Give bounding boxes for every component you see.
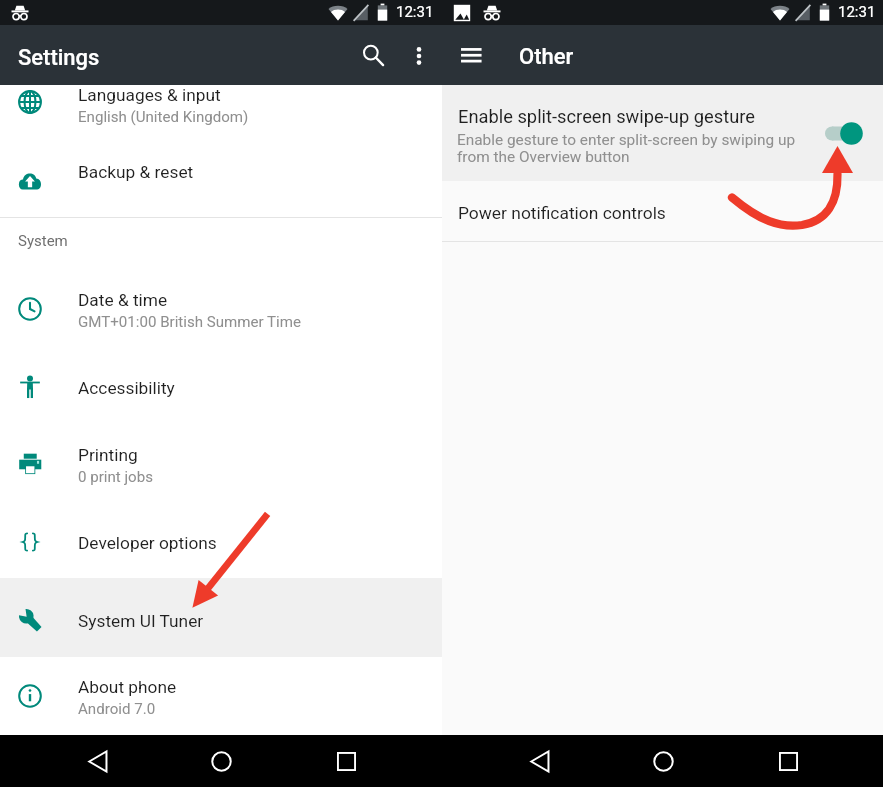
button[interactable]: Back xyxy=(514,735,566,787)
button[interactable]: Printing xyxy=(0,425,442,485)
staticText: Enable split-screen swipe-up gesture xyxy=(458,106,755,127)
button[interactable]: More options xyxy=(399,36,439,76)
button[interactable]: Back xyxy=(72,735,124,787)
staticText: Other xyxy=(519,44,574,70)
staticText: About phone xyxy=(78,677,177,697)
button[interactable] xyxy=(0,578,442,657)
staticText: GMT+01:00 British Summer Time xyxy=(78,313,302,331)
staticText: System xyxy=(18,232,68,250)
staticText: 12:31 xyxy=(396,3,434,21)
staticText: 0 print jobs xyxy=(78,468,153,486)
staticText: Developer options xyxy=(78,533,217,553)
staticText: Backup & reset xyxy=(78,162,194,182)
button[interactable]: Recent apps xyxy=(320,735,372,787)
button[interactable]: Languages & input xyxy=(0,85,442,139)
button[interactable]: Date & time xyxy=(0,258,442,318)
staticText: Date & time xyxy=(78,290,168,310)
button[interactable]: Enable split-screen swipe-up gesture xyxy=(442,85,883,181)
staticText: Android 7.0 xyxy=(78,700,156,718)
button[interactable]: System UI Tuner xyxy=(0,578,442,657)
button[interactable]: Home xyxy=(195,735,247,787)
staticText: Languages & input xyxy=(78,85,221,105)
button[interactable]: Home xyxy=(637,735,689,787)
button[interactable]: Power notification controls xyxy=(442,181,883,241)
staticText: 12:31 xyxy=(838,3,876,21)
staticText: Accessibility xyxy=(78,378,175,398)
staticText: System UI Tuner xyxy=(78,611,204,631)
staticText: English (United Kingdom) xyxy=(78,108,249,126)
button[interactable]: Developer options xyxy=(0,505,442,577)
staticText: Settings xyxy=(18,45,100,71)
button[interactable]: Accessibility xyxy=(0,350,442,422)
button[interactable]: Recent apps xyxy=(762,735,814,787)
staticText: Enable gesture to enter split-screen by … xyxy=(457,131,796,166)
button[interactable]: About phone xyxy=(0,657,442,735)
staticText: Printing xyxy=(78,445,138,465)
staticText: Power notification controls xyxy=(458,203,666,223)
button[interactable]: Backup & reset xyxy=(0,139,442,217)
button[interactable]: Open navigation menu xyxy=(450,35,490,75)
button[interactable]: Search xyxy=(353,35,393,75)
